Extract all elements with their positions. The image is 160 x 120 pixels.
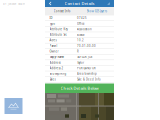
staticText: Parcel <box>50 44 58 48</box>
staticText: Acres <box>50 39 57 42</box>
button[interactable]: Parcel <box>45 43 114 49</box>
staticText: Office <box>77 22 85 25</box>
button[interactable]: Sec/Twp/Rng <box>45 71 114 77</box>
staticText: Address <box>50 61 61 64</box>
staticText: Sales <box>50 78 56 81</box>
staticText: Type <box>50 22 56 25</box>
staticText: Association <box>77 27 92 31</box>
staticText: 10.2 <box>77 39 84 42</box>
staticText: Sale & Deed Info <box>77 78 101 81</box>
staticText: ID <box>50 16 53 20</box>
staticText: Check Details Below <box>60 86 98 91</box>
staticText: Taylor <box>77 61 84 64</box>
button[interactable]: Check Details Below <box>45 83 114 93</box>
button[interactable]: Attribute Src <box>45 32 114 38</box>
button[interactable]: Sales <box>45 77 114 82</box>
staticText: Contact Info <box>54 9 71 13</box>
staticText: TAYLOR JOE <box>77 55 92 59</box>
staticText: Attribute Src <box>50 33 67 36</box>
staticText: PORTLAND OR <box>77 66 96 70</box>
staticText: Attribute Key <box>50 27 68 31</box>
button[interactable]: Acres <box>45 38 114 43</box>
button[interactable]: Attribute Key <box>45 27 114 32</box>
staticText: Sec/Twp/Rng <box>50 72 67 75</box>
button[interactable]: Publisher logo <box>4 98 22 114</box>
button[interactable]: Contact Info <box>45 7 79 15</box>
staticText: Address 2 <box>50 66 64 70</box>
staticText: R <box>77 50 79 53</box>
button[interactable]: Back <box>45 0 56 7</box>
button[interactable]: ID <box>45 15 114 21</box>
button[interactable]: Show GIS Layers <box>79 7 114 15</box>
staticText: Owner <box>50 50 59 53</box>
staticText: Taxpyr Name <box>50 55 65 59</box>
button[interactable]: Address <box>45 60 114 66</box>
button[interactable]: Address 2 <box>45 66 114 71</box>
staticText: 70-01-00-00 <box>77 44 96 48</box>
button[interactable]: Taxpyr Name <box>45 54 114 60</box>
button[interactable]: Type <box>45 21 114 27</box>
staticText: ASSESS <box>77 33 84 36</box>
staticText: BY JEREMY SMITH <box>3 2 25 6</box>
staticText: Show GIS Layers <box>87 9 107 13</box>
staticText: 07425 <box>77 16 87 20</box>
button[interactable]: Options <box>103 0 114 7</box>
button[interactable]: Owner <box>45 49 114 54</box>
staticText: Contact Details <box>64 1 94 6</box>
staticText: Area Township <box>77 72 97 75</box>
